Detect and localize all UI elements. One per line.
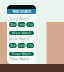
staticText: Tamil Watch xyxy=(9,17,29,21)
staticText: Two Watch xyxy=(12,9,31,14)
staticText: Three Watch xyxy=(9,57,29,61)
staticText: One xyxy=(10,23,16,26)
button[interactable]: Thr xyxy=(26,22,34,27)
staticText: Three Watch xyxy=(11,52,31,56)
staticText: Two xyxy=(18,44,25,47)
button[interactable]: Two xyxy=(18,43,25,48)
button[interactable]: Mixer Watch xyxy=(9,31,34,35)
staticText: Mixer Watch xyxy=(9,37,29,41)
button[interactable]: Thr xyxy=(26,43,34,48)
staticText: Two xyxy=(18,23,25,26)
button[interactable]: Three Watch xyxy=(9,52,34,56)
staticText: Mixer Watch xyxy=(11,31,31,35)
button[interactable]: Two xyxy=(18,22,25,27)
staticText: Thr xyxy=(28,44,33,47)
button[interactable]: One xyxy=(9,43,17,48)
button[interactable]: Two Watch xyxy=(7,9,36,14)
staticText: Thr xyxy=(28,23,33,26)
button[interactable]: One xyxy=(9,22,17,27)
staticText: One xyxy=(10,44,16,47)
